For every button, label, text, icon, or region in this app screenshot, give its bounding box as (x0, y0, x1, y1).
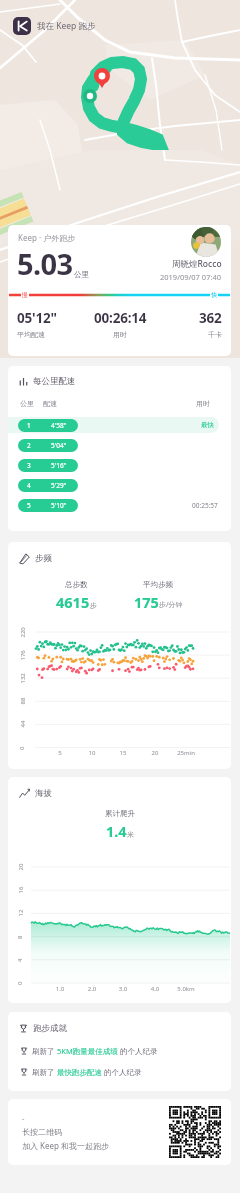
staticText: 5 (27, 501, 31, 510)
staticText: 3 (27, 461, 31, 470)
staticText: 5'16" (51, 461, 67, 470)
staticText: 88 (18, 697, 26, 704)
staticText: 用时 (196, 399, 210, 408)
staticText: 4 (27, 481, 31, 490)
staticText: 00:26:14 (94, 309, 147, 327)
staticText: 的个人纪录 (102, 1067, 142, 1077)
staticText: 2.0 (74, 985, 110, 993)
staticText: 15 (105, 749, 141, 757)
staticText: 176 (18, 649, 26, 660)
staticText: 3.0 (105, 985, 141, 993)
staticText: 16 (16, 886, 24, 893)
staticText: 长按二维码 (22, 1127, 62, 1137)
button[interactable]: 2 (8, 435, 231, 455)
staticText: 5KM跑量最佳成绩 (57, 1046, 118, 1056)
staticText: 2019/09/07 07:40 (160, 272, 222, 282)
staticText: 总步数 (65, 580, 88, 589)
other: Keep logo (13, 17, 31, 35)
staticText: 快 (211, 291, 217, 299)
staticText: 362 (199, 309, 222, 327)
staticText: 5'10" (51, 501, 67, 510)
staticText: 刷新了 (32, 1067, 57, 1077)
staticText: 4.0 (137, 985, 173, 993)
staticText: 步/分钟 (159, 600, 183, 610)
staticText: 0 (18, 746, 26, 750)
staticText: 平均配速 (17, 330, 45, 339)
staticText: 累计爬升 (105, 809, 135, 818)
staticText: 5'04" (51, 441, 67, 450)
staticText: 平均步频 (143, 580, 173, 589)
staticText: 5.03 (17, 244, 73, 283)
staticText: 周晓煌Rocco (172, 258, 222, 270)
staticText: 220 (18, 626, 26, 637)
staticText: 公里 (74, 270, 89, 279)
staticText: 最快跑步配速 (57, 1068, 102, 1077)
button[interactable]: 刷新了 (20, 1066, 231, 1078)
other: QR code (169, 1106, 221, 1158)
staticText: 最快 (201, 421, 214, 429)
button[interactable]: 3 (8, 455, 231, 475)
staticText: 步 (90, 601, 97, 610)
staticText: 加入 Keep 和我一起跑步 (22, 1140, 110, 1151)
staticText: 慢 (22, 291, 28, 299)
staticText: 步频 (35, 553, 52, 564)
staticText: 我在 Keep 跑步 (37, 20, 96, 32)
staticText: 每公里配速 (33, 376, 76, 387)
staticText: 1.0 (42, 985, 78, 993)
staticText: 2 (27, 441, 31, 450)
staticText: 的个人纪录 (118, 1046, 158, 1056)
staticText: 4'58" (51, 421, 67, 430)
staticText: 公里 (20, 399, 34, 408)
staticText: 跑步成就 (33, 1023, 67, 1034)
staticText: 5 (42, 749, 78, 757)
staticText: 1 (27, 421, 31, 430)
button[interactable]: 4 (8, 475, 231, 495)
staticText: 25min (168, 749, 204, 757)
button[interactable]: 刷新了 (20, 1045, 231, 1057)
staticText: 00:25:57 (192, 501, 218, 510)
staticText: 千卡 (208, 330, 222, 339)
staticText: 8 (16, 935, 24, 939)
staticText: 5.0km (168, 985, 204, 993)
button[interactable]: 5 (8, 495, 231, 515)
staticText: 4615 (56, 592, 90, 612)
button[interactable]: 1 (8, 415, 231, 435)
staticText: 刷新了 (32, 1046, 57, 1056)
staticText: 米 (127, 830, 134, 839)
staticText: 132 (18, 672, 26, 683)
staticText: 175 (134, 592, 159, 612)
staticText: 用时 (113, 330, 127, 339)
staticText: 海拔 (35, 788, 52, 799)
staticText: 5'29" (51, 481, 67, 490)
staticText: Keep · 户外跑步 (18, 232, 76, 243)
staticText: 20 (137, 749, 173, 757)
staticText: 1.4 (106, 821, 127, 841)
staticText: 20 (16, 863, 24, 870)
staticText: - (22, 1113, 25, 1123)
staticText: 10 (74, 749, 110, 757)
staticText: 44 (18, 720, 26, 727)
staticText: 配速 (43, 399, 57, 408)
staticText: 4 (16, 958, 24, 962)
staticText: 05'12" (17, 309, 57, 327)
staticText: 0 (16, 981, 24, 985)
staticText: 12 (16, 909, 24, 916)
